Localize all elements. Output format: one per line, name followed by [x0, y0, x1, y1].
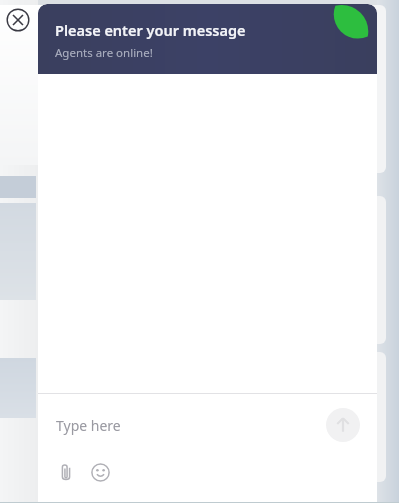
- button[interactable]: Close chat: [6, 8, 30, 32]
- staticText: Please enter your message: [55, 20, 246, 40]
- button[interactable]: Attach file: [50, 456, 82, 488]
- button[interactable]: Insert emoji: [84, 456, 116, 488]
- staticText: Agents are online!: [55, 45, 153, 61]
- button[interactable]: Type here: [38, 394, 326, 456]
- staticText: Type here: [56, 416, 121, 435]
- button[interactable]: Send message: [326, 408, 360, 442]
